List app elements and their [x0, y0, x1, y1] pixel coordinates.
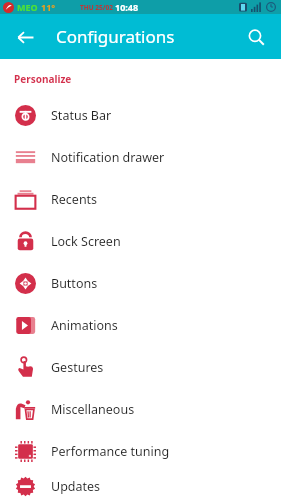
staticText: Lock Screen	[51, 233, 121, 250]
staticText: Miscellaneous	[51, 401, 135, 418]
button[interactable]: Buttons	[0, 262, 281, 304]
staticText: Recents	[51, 191, 98, 208]
button[interactable]: Gestures	[0, 346, 281, 388]
button[interactable]: Updates	[0, 472, 281, 500]
button[interactable]: Recents	[0, 178, 281, 220]
staticText: Status Bar	[51, 107, 112, 124]
button[interactable]: Status Bar	[0, 94, 281, 136]
button[interactable]: Performance tuning	[0, 430, 281, 472]
staticText: Performance tuning	[51, 443, 170, 460]
staticText: Notification drawer	[51, 149, 165, 166]
staticText: MEO	[17, 1, 38, 13]
staticText: Configurations	[56, 25, 175, 48]
button[interactable]: Lock Screen	[0, 220, 281, 262]
staticText: Gestures	[51, 359, 104, 376]
button[interactable]: Back	[8, 20, 42, 54]
staticText: 11°	[41, 1, 56, 13]
button[interactable]: Miscellaneous	[0, 388, 281, 430]
staticText: Personalize	[14, 72, 72, 86]
staticText: THU 25/02	[80, 3, 113, 12]
staticText: Updates	[51, 478, 101, 495]
staticText: Animations	[51, 317, 118, 334]
staticText: Buttons	[51, 275, 98, 292]
button[interactable]: Notification drawer	[0, 136, 281, 178]
button[interactable]: Search	[239, 20, 273, 54]
staticText: 10:48	[115, 1, 139, 13]
button[interactable]: Animations	[0, 304, 281, 346]
